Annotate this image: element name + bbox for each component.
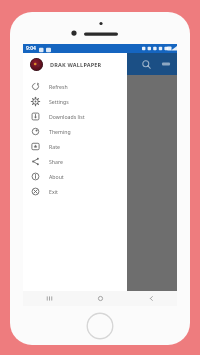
staticText: Rate xyxy=(49,143,60,150)
staticText: Settings xyxy=(49,98,69,105)
button[interactable]: Share xyxy=(23,154,127,169)
button[interactable]: Theming xyxy=(23,124,127,139)
button[interactable]: Back xyxy=(126,291,177,306)
staticText: Exit xyxy=(49,188,58,195)
staticText: DRAK WALLPAPER xyxy=(50,61,102,68)
button[interactable]: Exit xyxy=(23,184,127,199)
staticText: Refresh xyxy=(49,83,68,90)
button[interactable]: Rate xyxy=(23,139,127,154)
button[interactable]: App logo xyxy=(30,58,43,71)
button[interactable]: Search xyxy=(139,57,153,71)
button[interactable]: Downloads list xyxy=(23,109,127,124)
button[interactable]: Home xyxy=(86,312,114,340)
button[interactable]: More options xyxy=(159,57,173,71)
button[interactable]: About xyxy=(23,169,127,184)
staticText: Downloads list xyxy=(49,113,85,120)
staticText: Theming xyxy=(49,128,71,135)
staticText: 9:04 xyxy=(26,45,36,52)
staticText: About xyxy=(49,173,64,180)
button[interactable]: Recent apps xyxy=(23,291,75,306)
staticText: Share xyxy=(49,158,63,165)
button[interactable]: Home xyxy=(75,291,126,306)
button[interactable]: Settings xyxy=(23,94,127,109)
button[interactable]: Refresh xyxy=(23,79,127,94)
